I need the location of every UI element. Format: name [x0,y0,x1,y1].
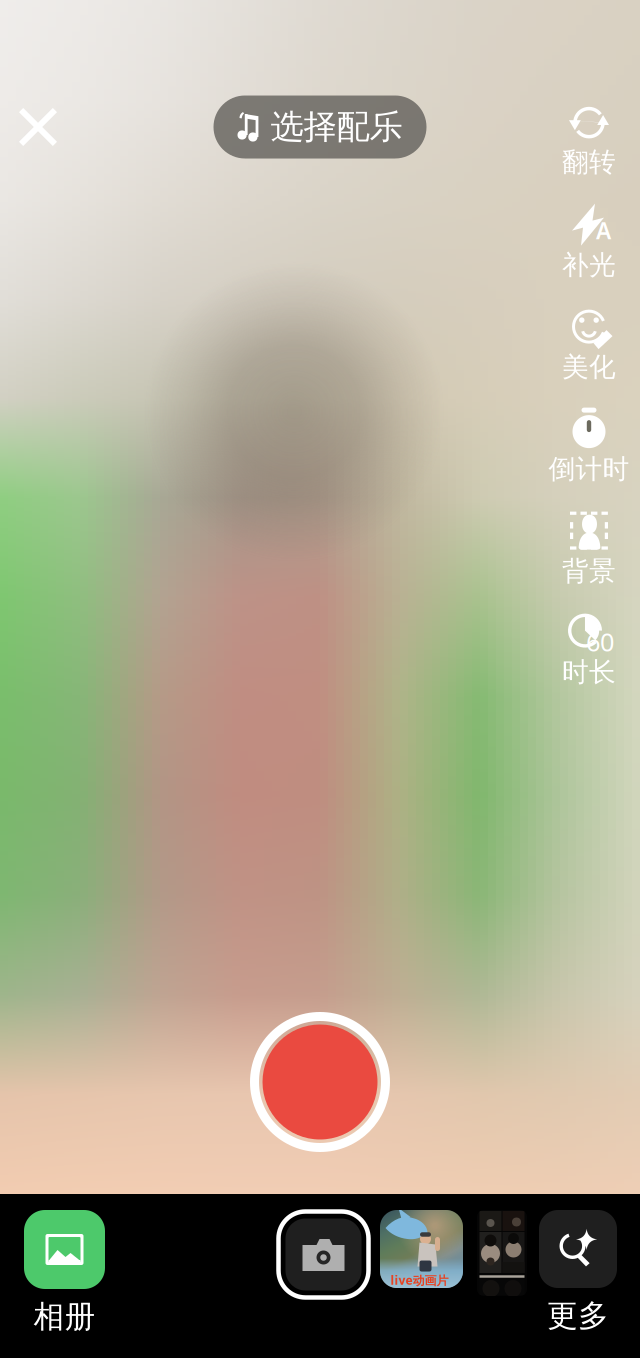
staticText: 补光 [562,249,616,281]
staticText: A [596,215,611,246]
button[interactable]: 翻转 [541,102,637,178]
staticText: 时长 [562,656,616,688]
staticText: 60 [586,625,614,658]
button[interactable]: 选择配乐 [213,95,426,158]
button[interactable]: Faces template [477,1210,527,1296]
staticText: 美化 [562,351,616,383]
button[interactable]: 倒计时 [541,408,637,484]
staticText: 选择配乐 [270,106,402,147]
button[interactable]: Record [246,1008,394,1156]
button[interactable]: 相册 [24,1210,105,1336]
button[interactable]: 背景 [541,510,637,586]
button[interactable]: Close [0,94,76,160]
button[interactable]: A [541,204,637,280]
button[interactable]: 60 [541,612,637,688]
staticText: 相册 [33,1298,95,1336]
button[interactable]: 更多 [539,1210,617,1335]
button[interactable]: Live photo effects [380,1210,463,1288]
staticText: live动画片 [390,1272,448,1288]
staticText: 更多 [547,1297,609,1335]
button[interactable]: 美化 [541,306,637,382]
staticText: 倒计时 [548,453,629,485]
button[interactable]: Camera [277,1210,370,1299]
staticText: 翻转 [562,146,616,178]
staticText: 背景 [562,555,616,587]
